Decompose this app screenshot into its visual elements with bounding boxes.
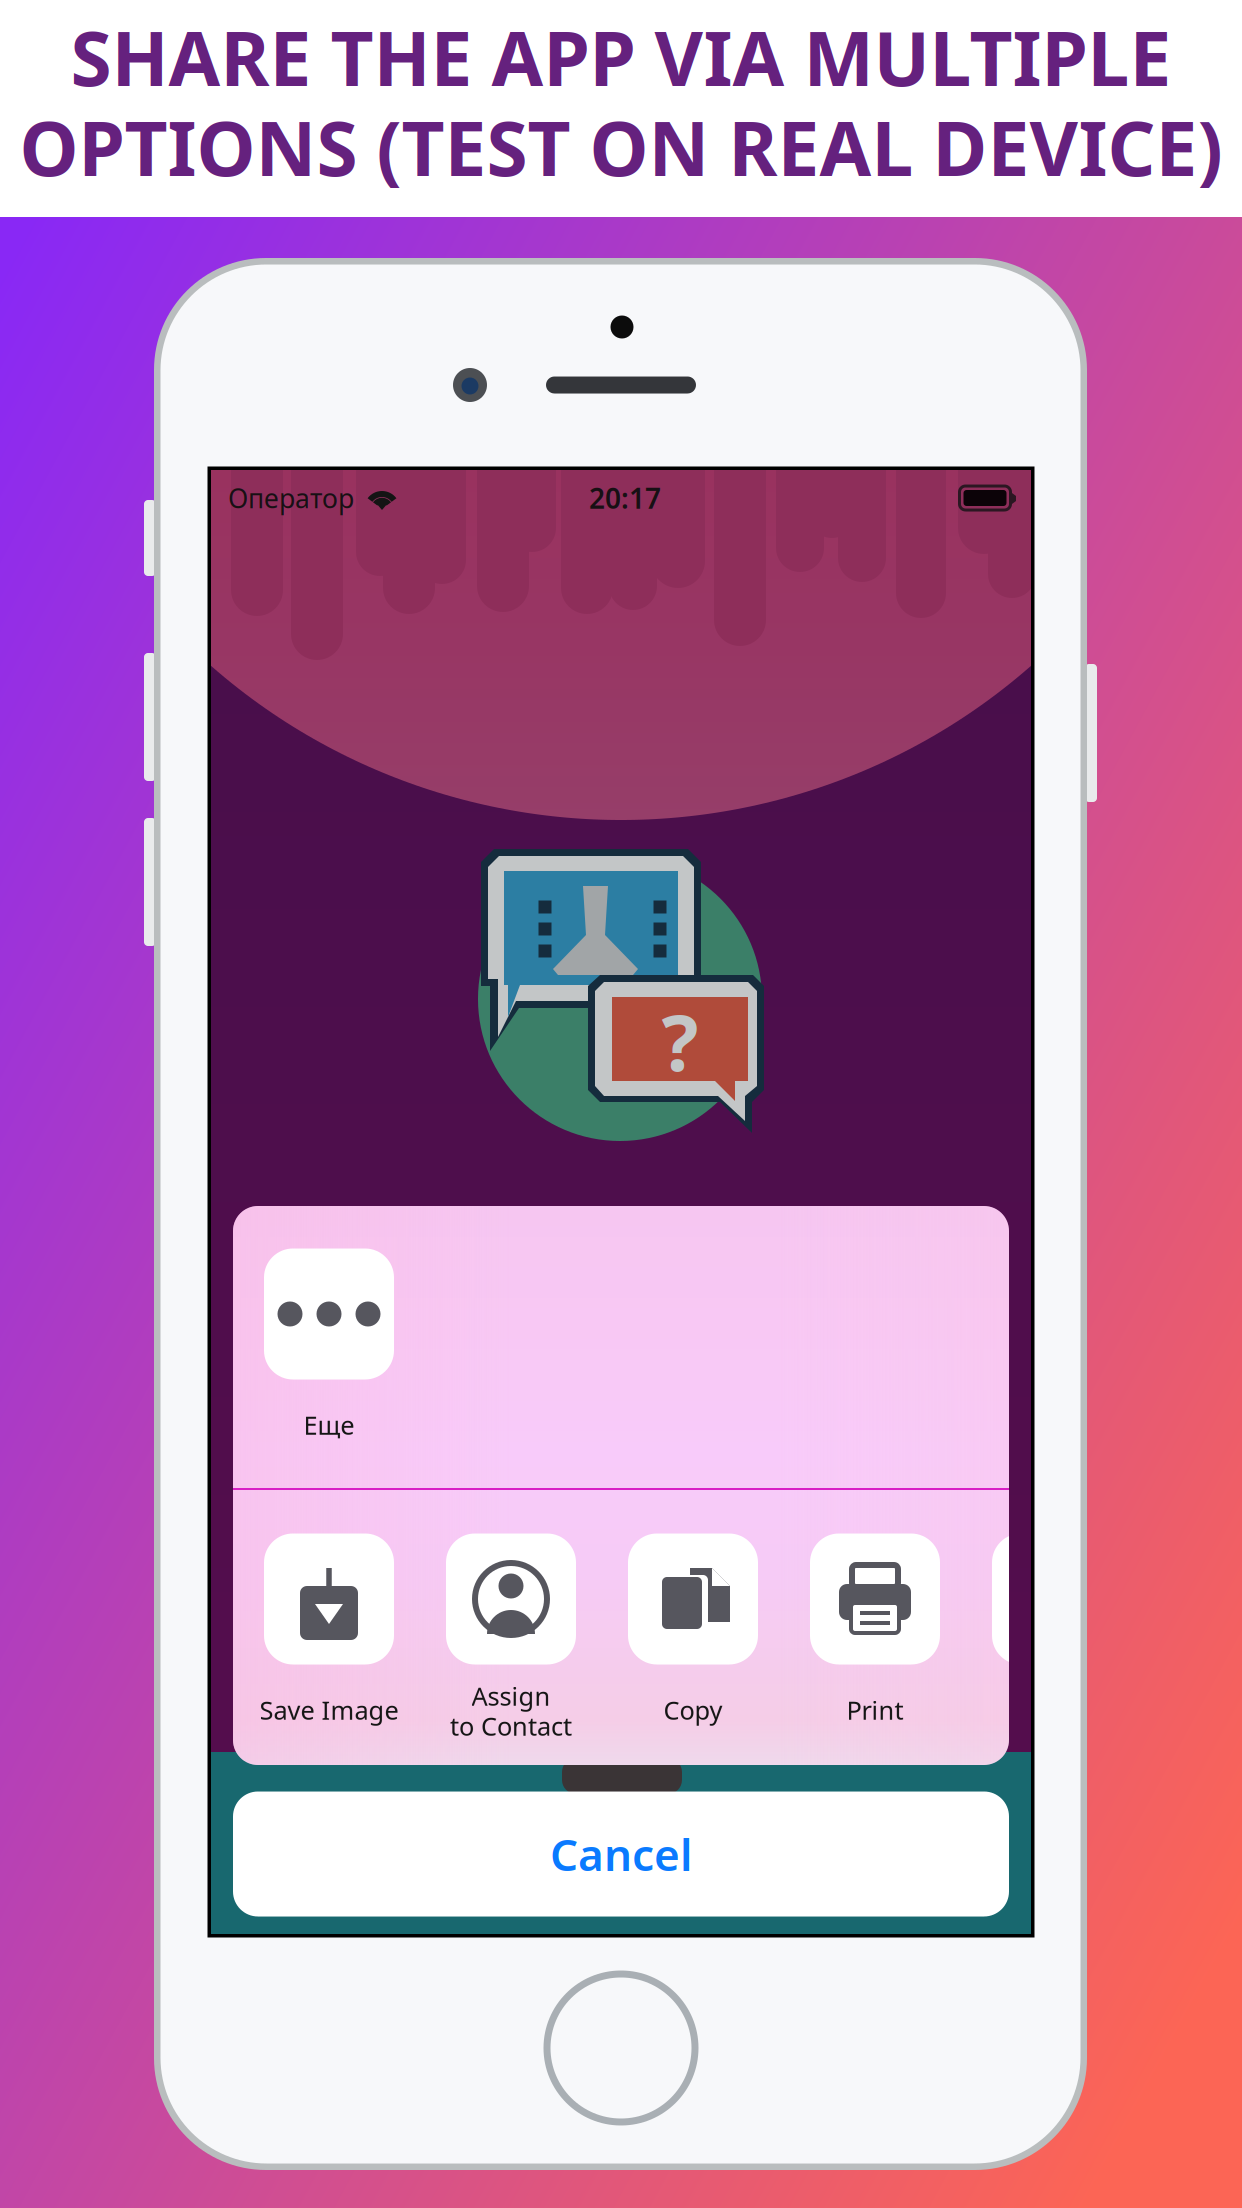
staticText: SHARE THE APP VIA MULTIPLE xyxy=(70,7,1171,107)
staticText: Print xyxy=(846,1693,903,1727)
staticText: Cancel xyxy=(550,1825,692,1883)
button[interactable]: Assign xyxy=(401,1533,621,1763)
staticText: Еще xyxy=(303,1408,354,1442)
staticText: Save Image xyxy=(259,1693,398,1727)
staticText: 20:17 xyxy=(589,479,661,517)
staticText: Copy xyxy=(663,1693,722,1727)
staticText: to Contact xyxy=(450,1709,572,1743)
button[interactable]: Cancel xyxy=(233,1791,1009,1916)
button[interactable]: Co xyxy=(947,1533,1167,1763)
button[interactable]: Save Image xyxy=(219,1533,439,1763)
staticText: OPTIONS (TEST ON REAL DEVICE) xyxy=(19,97,1222,197)
button[interactable]: Copy xyxy=(583,1533,803,1763)
staticText: Оператор xyxy=(228,480,354,516)
button[interactable]: Print xyxy=(765,1533,985,1763)
staticText: ? xyxy=(661,990,698,1092)
button[interactable]: Еще xyxy=(219,1248,439,1478)
staticText: Assign xyxy=(471,1679,550,1713)
